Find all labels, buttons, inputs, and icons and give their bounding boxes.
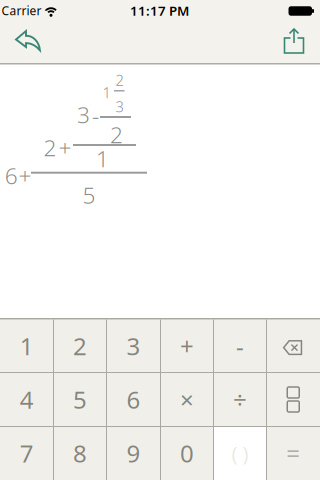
button[interactable]: 6: [106, 372, 160, 426]
button[interactable]: 1: [0, 319, 53, 372]
staticText: 2: [73, 330, 87, 362]
button[interactable]: +: [160, 319, 213, 372]
button[interactable]: ÷: [213, 372, 266, 426]
staticText: 3: [115, 97, 123, 116]
button[interactable]: 2: [53, 319, 106, 372]
staticText: 7: [20, 437, 34, 469]
button[interactable]: 5: [53, 372, 106, 426]
button[interactable]: [266, 372, 320, 426]
staticText: 1: [20, 330, 34, 362]
staticText: 9: [126, 437, 140, 469]
button[interactable]: ×: [160, 372, 213, 426]
staticText: 8: [73, 437, 87, 469]
button[interactable]: =: [266, 426, 320, 480]
staticText: +: [18, 161, 31, 191]
staticText: 2: [43, 132, 56, 162]
staticText: ÷: [233, 384, 247, 415]
staticText: 2: [115, 70, 123, 90]
staticText: 1: [102, 83, 110, 102]
staticText: +: [180, 330, 194, 362]
staticText: ( ): [231, 440, 248, 467]
button[interactable]: ( ): [213, 426, 266, 480]
staticText: 5: [82, 180, 95, 210]
staticText: Carrier: [1, 2, 41, 18]
staticText: 2: [110, 119, 123, 149]
button[interactable]: [13, 27, 45, 55]
button[interactable]: 9: [106, 426, 160, 480]
button[interactable]: -: [213, 319, 266, 372]
staticText: +: [58, 133, 71, 163]
button[interactable]: 8: [53, 426, 106, 480]
button[interactable]: 0: [160, 426, 213, 480]
staticText: 5: [73, 384, 87, 415]
staticText: -: [92, 101, 99, 131]
staticText: -: [236, 330, 244, 362]
staticText: 0: [180, 437, 194, 469]
staticText: 3: [126, 330, 140, 362]
button[interactable]: [281, 28, 307, 58]
staticText: 4: [20, 384, 34, 415]
staticText: 3: [77, 99, 90, 129]
button[interactable]: 7: [0, 426, 53, 480]
staticText: ×: [180, 384, 194, 415]
staticText: 6: [126, 384, 140, 415]
button[interactable]: [266, 319, 320, 372]
staticText: =: [286, 437, 300, 469]
button[interactable]: 4: [0, 372, 53, 426]
staticText: 6: [5, 160, 18, 190]
staticText: 1: [96, 143, 109, 173]
button[interactable]: 3: [106, 319, 160, 372]
staticText: 11:17 PM: [130, 2, 189, 19]
